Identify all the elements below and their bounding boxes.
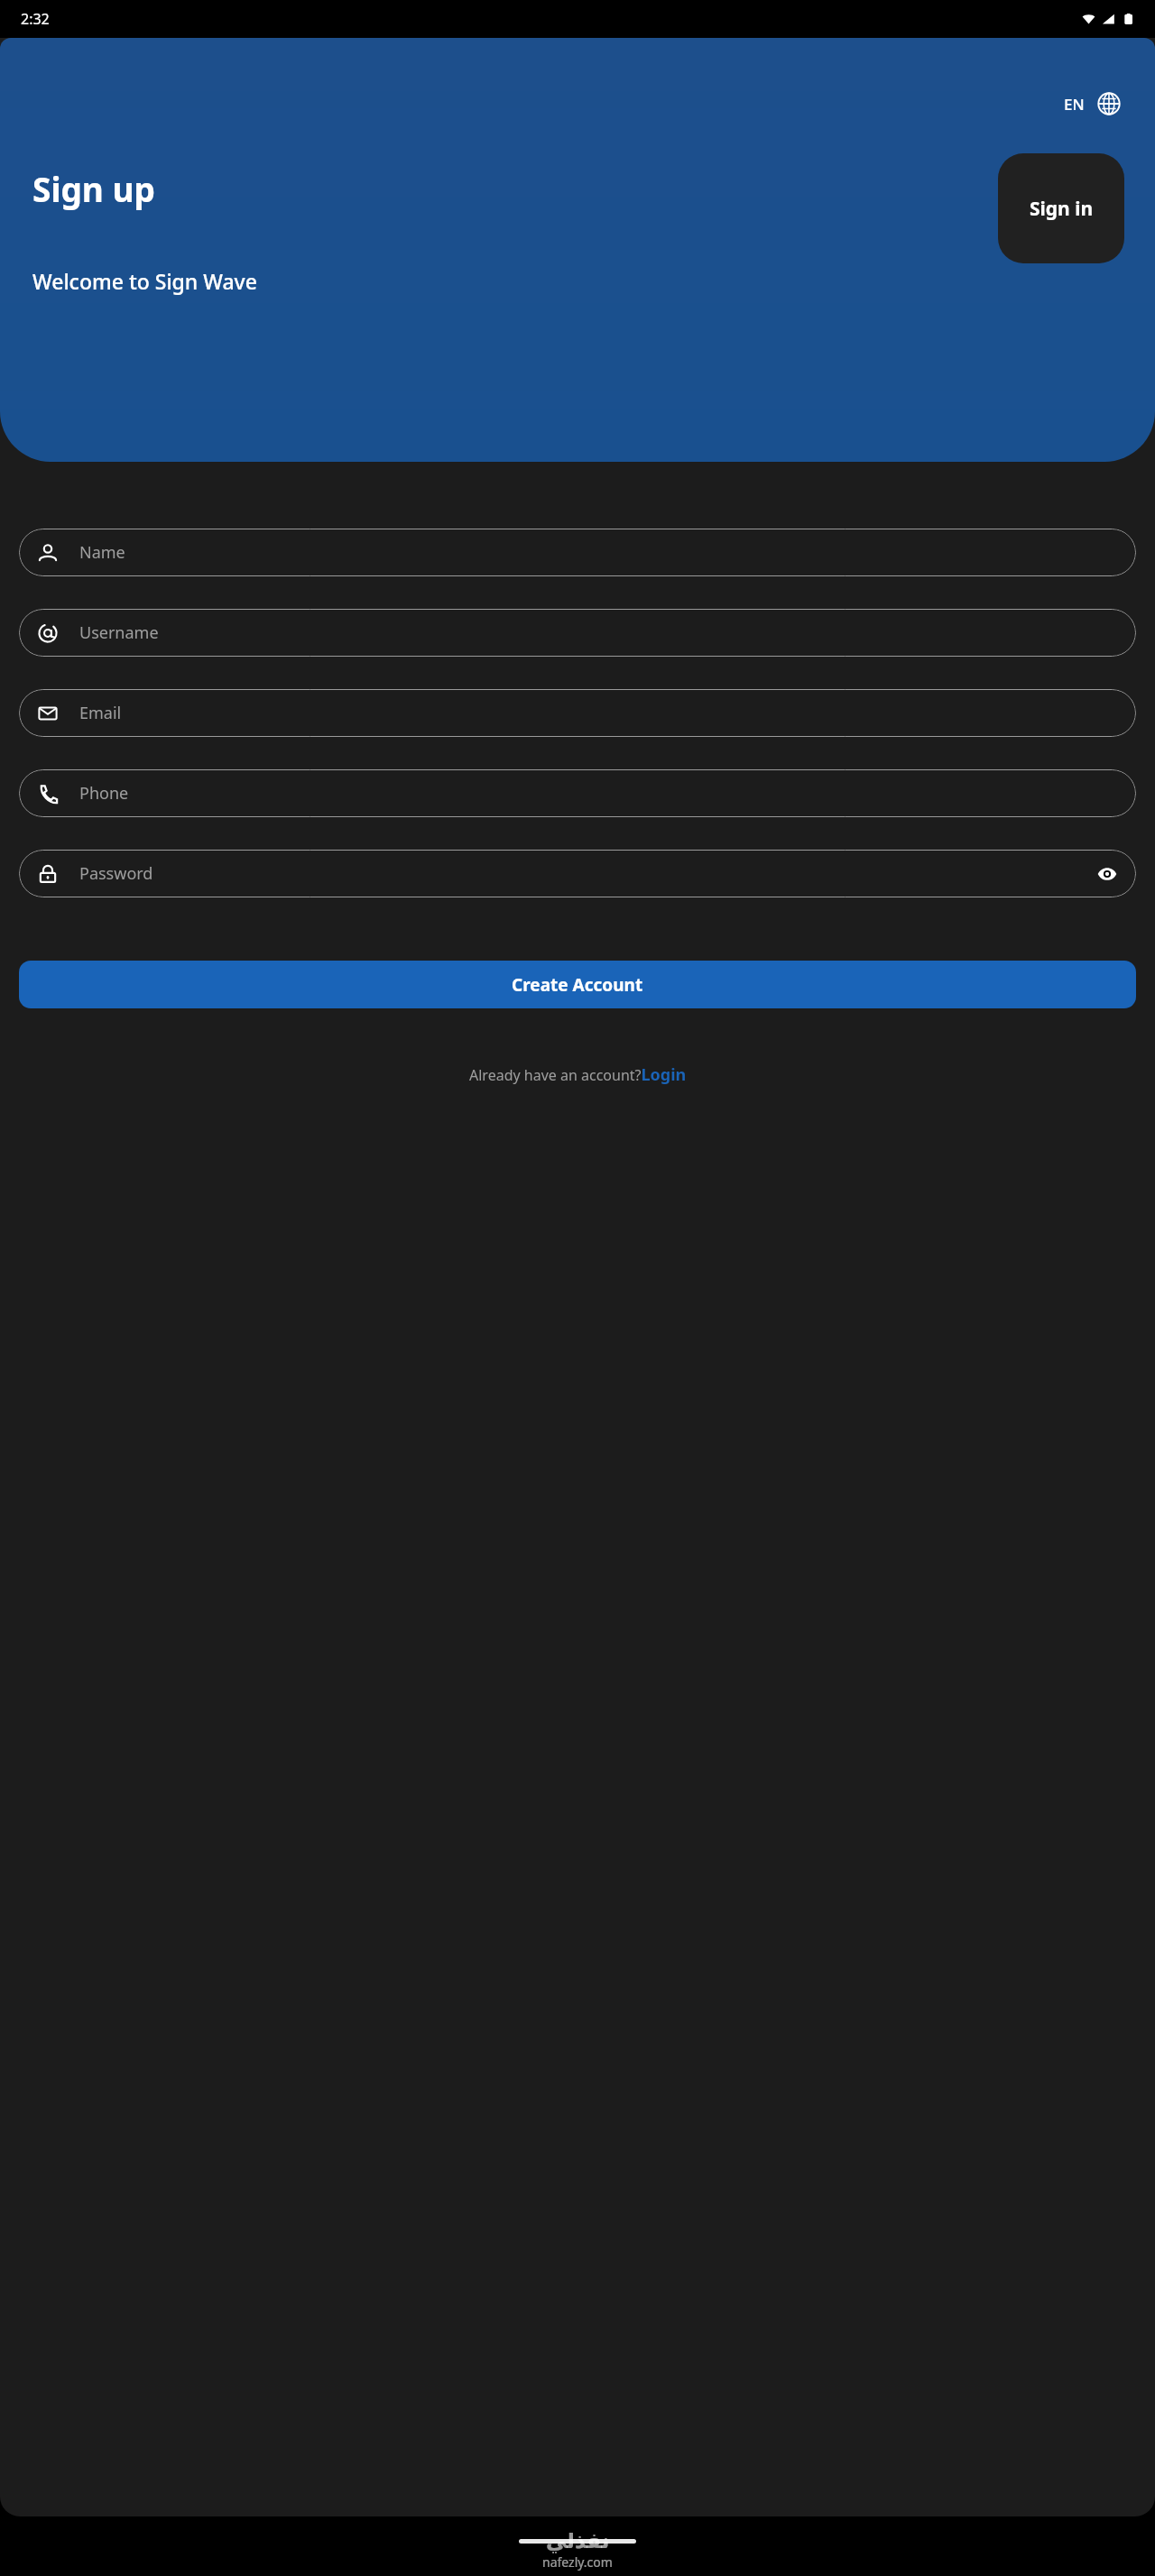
staticText: Create Account: [512, 973, 643, 997]
button[interactable]: Create Account: [19, 961, 1136, 1008]
button[interactable]: EN: [1060, 88, 1124, 119]
staticText: نفذلي: [546, 2529, 610, 2553]
staticText: Welcome to Sign Wave: [32, 267, 257, 295]
button[interactable]: Phone: [19, 769, 1136, 817]
button[interactable]: Password: [19, 850, 1136, 897]
button[interactable]: Name: [19, 529, 1136, 576]
staticText: Sign up: [32, 166, 155, 211]
staticText: Email: [79, 702, 1118, 724]
staticText: Sign in: [1030, 196, 1094, 222]
staticText: Already have an account?Login: [469, 1063, 687, 1086]
other: Change language: [1097, 92, 1121, 115]
staticText: Username: [79, 621, 1118, 644]
staticText: Password: [79, 862, 1096, 885]
button[interactable]: Sign in: [998, 153, 1124, 263]
staticText: nafezly.com: [542, 2553, 613, 2571]
staticText: 2:32: [21, 9, 50, 29]
staticText: EN: [1064, 94, 1085, 115]
button[interactable]: Username: [19, 609, 1136, 657]
staticText: Phone: [79, 782, 1118, 805]
other: Show password: [1096, 863, 1118, 885]
staticText: Name: [79, 541, 1118, 564]
button[interactable]: Already have an account?Login: [466, 1060, 690, 1090]
button[interactable]: Email: [19, 689, 1136, 737]
